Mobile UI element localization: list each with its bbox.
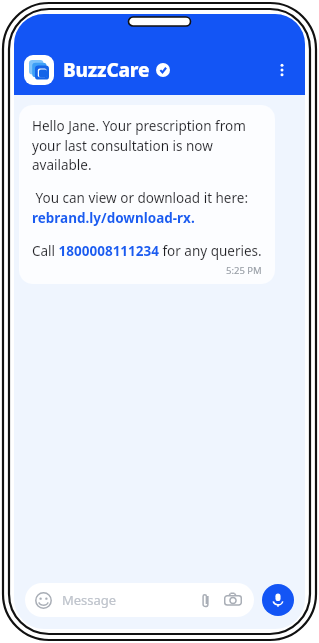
button[interactable]: Emoji [25, 583, 254, 617]
button[interactable]: More options [267, 55, 297, 85]
other: Verified [156, 63, 170, 77]
staticText: Hello Jane. Your prescription from your … [32, 117, 262, 174]
other: Emoji [35, 592, 52, 609]
button[interactable]: BuzzCare logo [24, 55, 54, 85]
staticText: Message [62, 591, 117, 609]
button[interactable]: Attach file [195, 590, 215, 610]
staticText: BuzzCare [63, 57, 150, 83]
staticText: You can view or download it here: rebran… [32, 189, 262, 227]
button[interactable]: Voice message [262, 584, 294, 616]
button[interactable]: Hello Jane. Your prescription from your … [19, 105, 275, 284]
button[interactable]: Camera [222, 589, 244, 611]
staticText: 5:25 PM [226, 264, 262, 277]
staticText: Call 1800008111234 for any queries. [32, 242, 262, 260]
